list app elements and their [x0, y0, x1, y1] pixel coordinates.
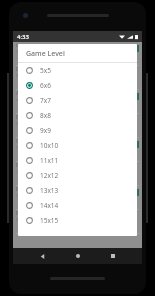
staticText: P: [16, 162, 20, 169]
staticText: 13x13: [40, 186, 59, 195]
button[interactable]: Back: [35, 249, 49, 263]
button[interactable]: Recent apps: [106, 249, 120, 263]
staticText: 11x11: [40, 156, 59, 165]
button[interactable]: 15x15: [18, 213, 137, 228]
staticText: 6x6: [40, 81, 51, 90]
staticText: 9x9: [40, 126, 51, 135]
staticText: 7x7: [40, 96, 51, 105]
staticText: M: [16, 217, 20, 222]
staticText: D: [16, 66, 20, 73]
staticText: Game Level: [26, 49, 65, 59]
staticText: G: [16, 138, 20, 145]
staticText: B: [16, 114, 20, 121]
button[interactable]: 12x12: [18, 168, 137, 183]
staticText: D: [16, 145, 19, 150]
staticText: R: [16, 186, 20, 193]
staticText: 5x5: [40, 66, 51, 75]
button[interactable]: 13x13: [18, 183, 137, 198]
staticText: 8x8: [40, 111, 51, 120]
staticText: S: [16, 49, 19, 54]
staticText: 6: [16, 121, 19, 126]
staticText: 12x12: [40, 171, 59, 180]
staticText: 4:33: [17, 33, 29, 41]
button[interactable]: 7x7: [18, 93, 137, 108]
staticText: M: [16, 73, 20, 78]
button[interactable]: 9x9: [18, 123, 137, 138]
staticText: L: [16, 42, 19, 49]
staticText: C: [16, 169, 19, 174]
staticText: a: [16, 97, 19, 102]
staticText: R: [16, 210, 20, 217]
staticText: 15x15: [40, 216, 59, 225]
staticText: S: [16, 193, 19, 198]
button[interactable]: Home: [71, 249, 85, 263]
staticText: 10x10: [40, 141, 59, 150]
button[interactable]: 8x8: [18, 108, 137, 123]
button[interactable]: 10x10: [18, 138, 137, 153]
button[interactable]: 6x6: [18, 78, 137, 93]
button[interactable]: 14x14: [18, 198, 137, 213]
button[interactable]: 11x11: [18, 153, 137, 168]
staticText: 14x14: [40, 201, 59, 210]
staticText: A: [16, 90, 20, 97]
button[interactable]: 5x5: [18, 63, 137, 78]
